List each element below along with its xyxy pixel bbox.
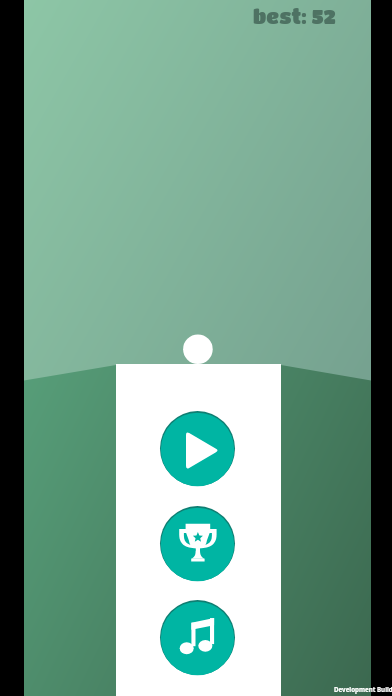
staticText: Development Build: [334, 685, 392, 693]
button[interactable]: Music: [160, 601, 235, 676]
button[interactable]: Leaderboard: [160, 507, 235, 582]
staticText: best: 52: [253, 5, 336, 28]
button[interactable]: Play: [160, 412, 235, 487]
